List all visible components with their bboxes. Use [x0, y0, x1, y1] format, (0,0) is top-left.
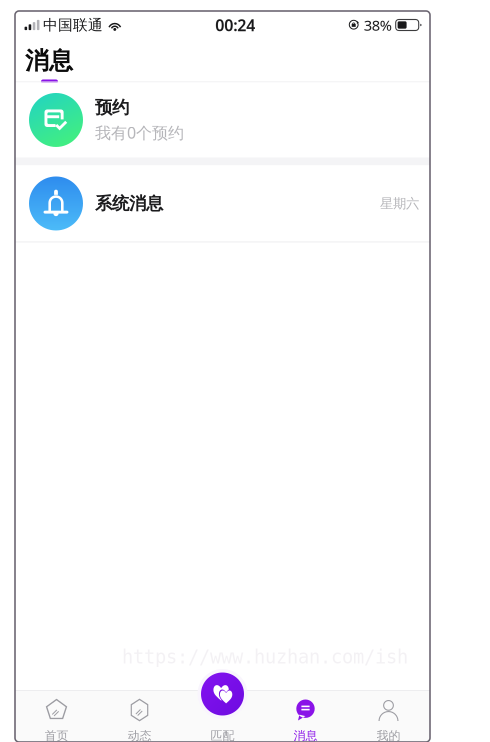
staticText: https://www.huzhan.com/ish [122, 646, 408, 668]
staticText: 我有0个预约 [95, 122, 184, 143]
staticText: 首页 [44, 728, 68, 742]
staticText: 预约 [95, 97, 129, 118]
staticText: 星期六 [380, 195, 419, 212]
staticText: 系统消息 [95, 193, 163, 214]
staticText: 我的 [376, 728, 400, 742]
button[interactable]: 消息 [264, 689, 347, 742]
staticText: 38% [364, 15, 392, 35]
staticText: 中国联通 [43, 16, 103, 34]
button[interactable]: 预约 [15, 82, 430, 157]
staticText: 动态 [127, 728, 151, 742]
button[interactable]: 首页 [15, 689, 98, 742]
staticText: 00:24 [215, 14, 255, 36]
staticText: 消息 [293, 728, 317, 742]
button[interactable]: 我的 [347, 689, 430, 742]
button[interactable]: 系统消息 [15, 165, 430, 241]
button[interactable]: 匹配 [197, 669, 247, 719]
button[interactable]: 动态 [98, 689, 181, 742]
staticText: 匹配 [210, 728, 234, 742]
staticText: 消息 [25, 46, 73, 75]
button[interactable]: 匹配 [181, 689, 264, 742]
